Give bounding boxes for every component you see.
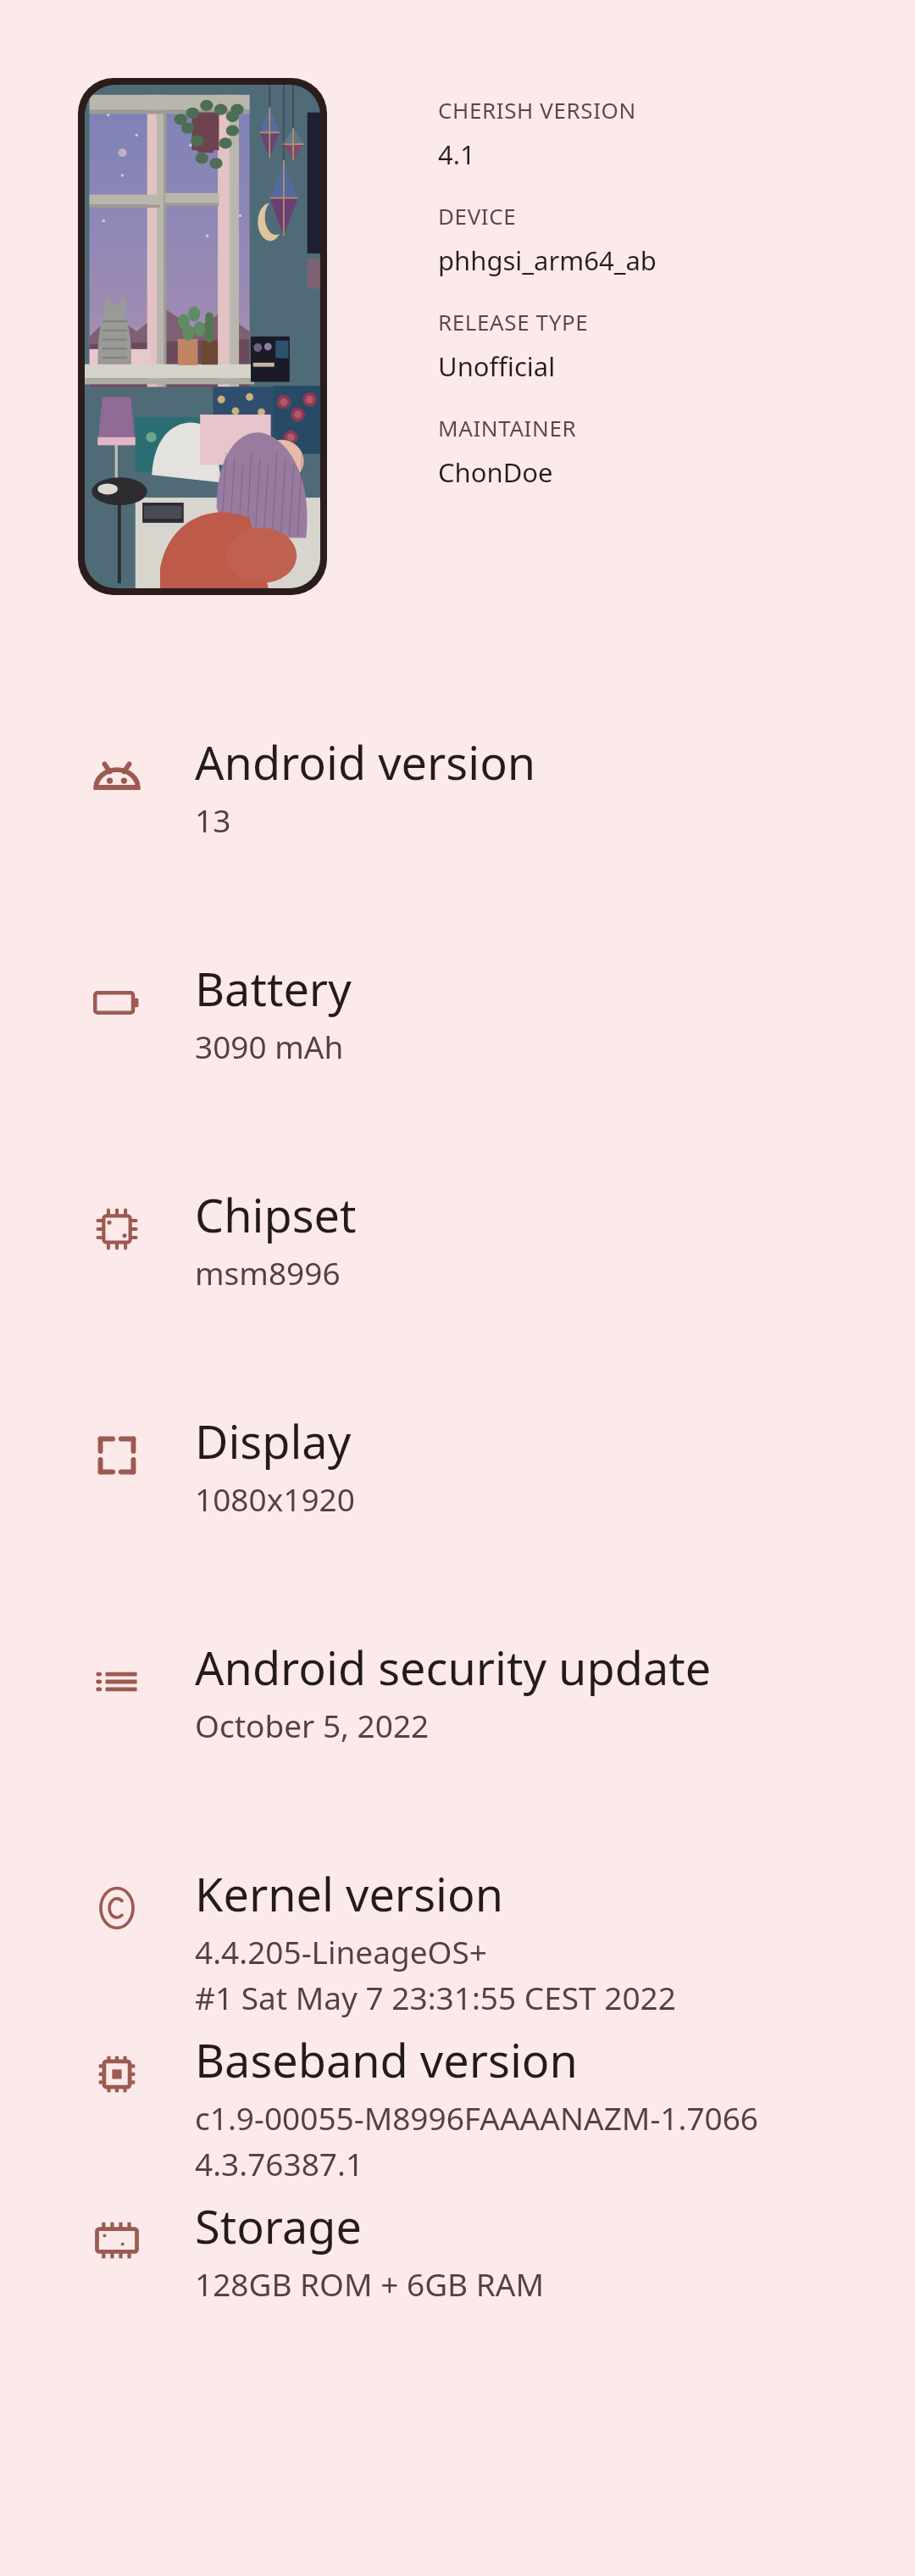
staticText: Battery [195,957,352,1020]
staticText: #1 Sat May 7 23:31:55 CEST 2022 [195,1976,676,2018]
staticText: 13 [195,798,231,841]
staticText: Storage [195,2195,362,2257]
staticText: Unofficial [438,348,556,384]
button[interactable]: Display [0,1410,915,1636]
staticText: CHERISH VERSION [438,95,636,125]
staticText: 3090 mAh [195,1025,344,1067]
staticText: Android security update [195,1636,712,1699]
other: Display [93,1432,141,1479]
staticText: phhgsi_arm64_ab [438,242,657,278]
button[interactable]: Android version [0,731,915,957]
other: Baseband version [93,2050,141,2098]
staticText: 4.3.76387.1 [195,2142,364,2184]
other: Android version [93,753,141,800]
button[interactable]: Kernel version [0,1862,915,2028]
staticText: October 5, 2022 [195,1704,430,1746]
staticText: 4.1 [438,136,475,172]
staticText: RELEASE TYPE [438,307,589,337]
staticText: msm8996 [195,1251,341,1294]
other: Storage [93,2217,141,2264]
staticText: 4.4.205-LineageOS+ [195,1930,487,1972]
button[interactable]: Android security update [0,1636,915,1862]
staticText: Baseband version [195,2028,578,2091]
other: Battery [93,979,141,1027]
staticText: MAINTAINER [438,413,577,442]
staticText: Display [195,1410,352,1472]
staticText: DEVICE [438,201,517,231]
staticText: Kernel version [195,1862,504,1925]
staticText: Android version [195,731,536,793]
staticText: ChonDoe [438,454,553,490]
button[interactable]: Storage [0,2195,915,2421]
staticText: 1080x1920 [195,1477,355,1520]
staticText: 128GB ROM + 6GB RAM [195,2262,544,2305]
other: Android security update [93,1658,141,1705]
staticText: c1.9-00055-M8996FAAAANAZM-1.7066 [195,2096,759,2139]
other: Kernel version [93,1884,141,1932]
button[interactable]: Device wallpaper preview [78,78,327,595]
other: Chipset [93,1205,141,1253]
button[interactable]: Baseband version [0,2028,915,2195]
staticText: Chipset [195,1183,357,1246]
button[interactable]: Chipset [0,1183,915,1410]
button[interactable]: Battery [0,957,915,1183]
